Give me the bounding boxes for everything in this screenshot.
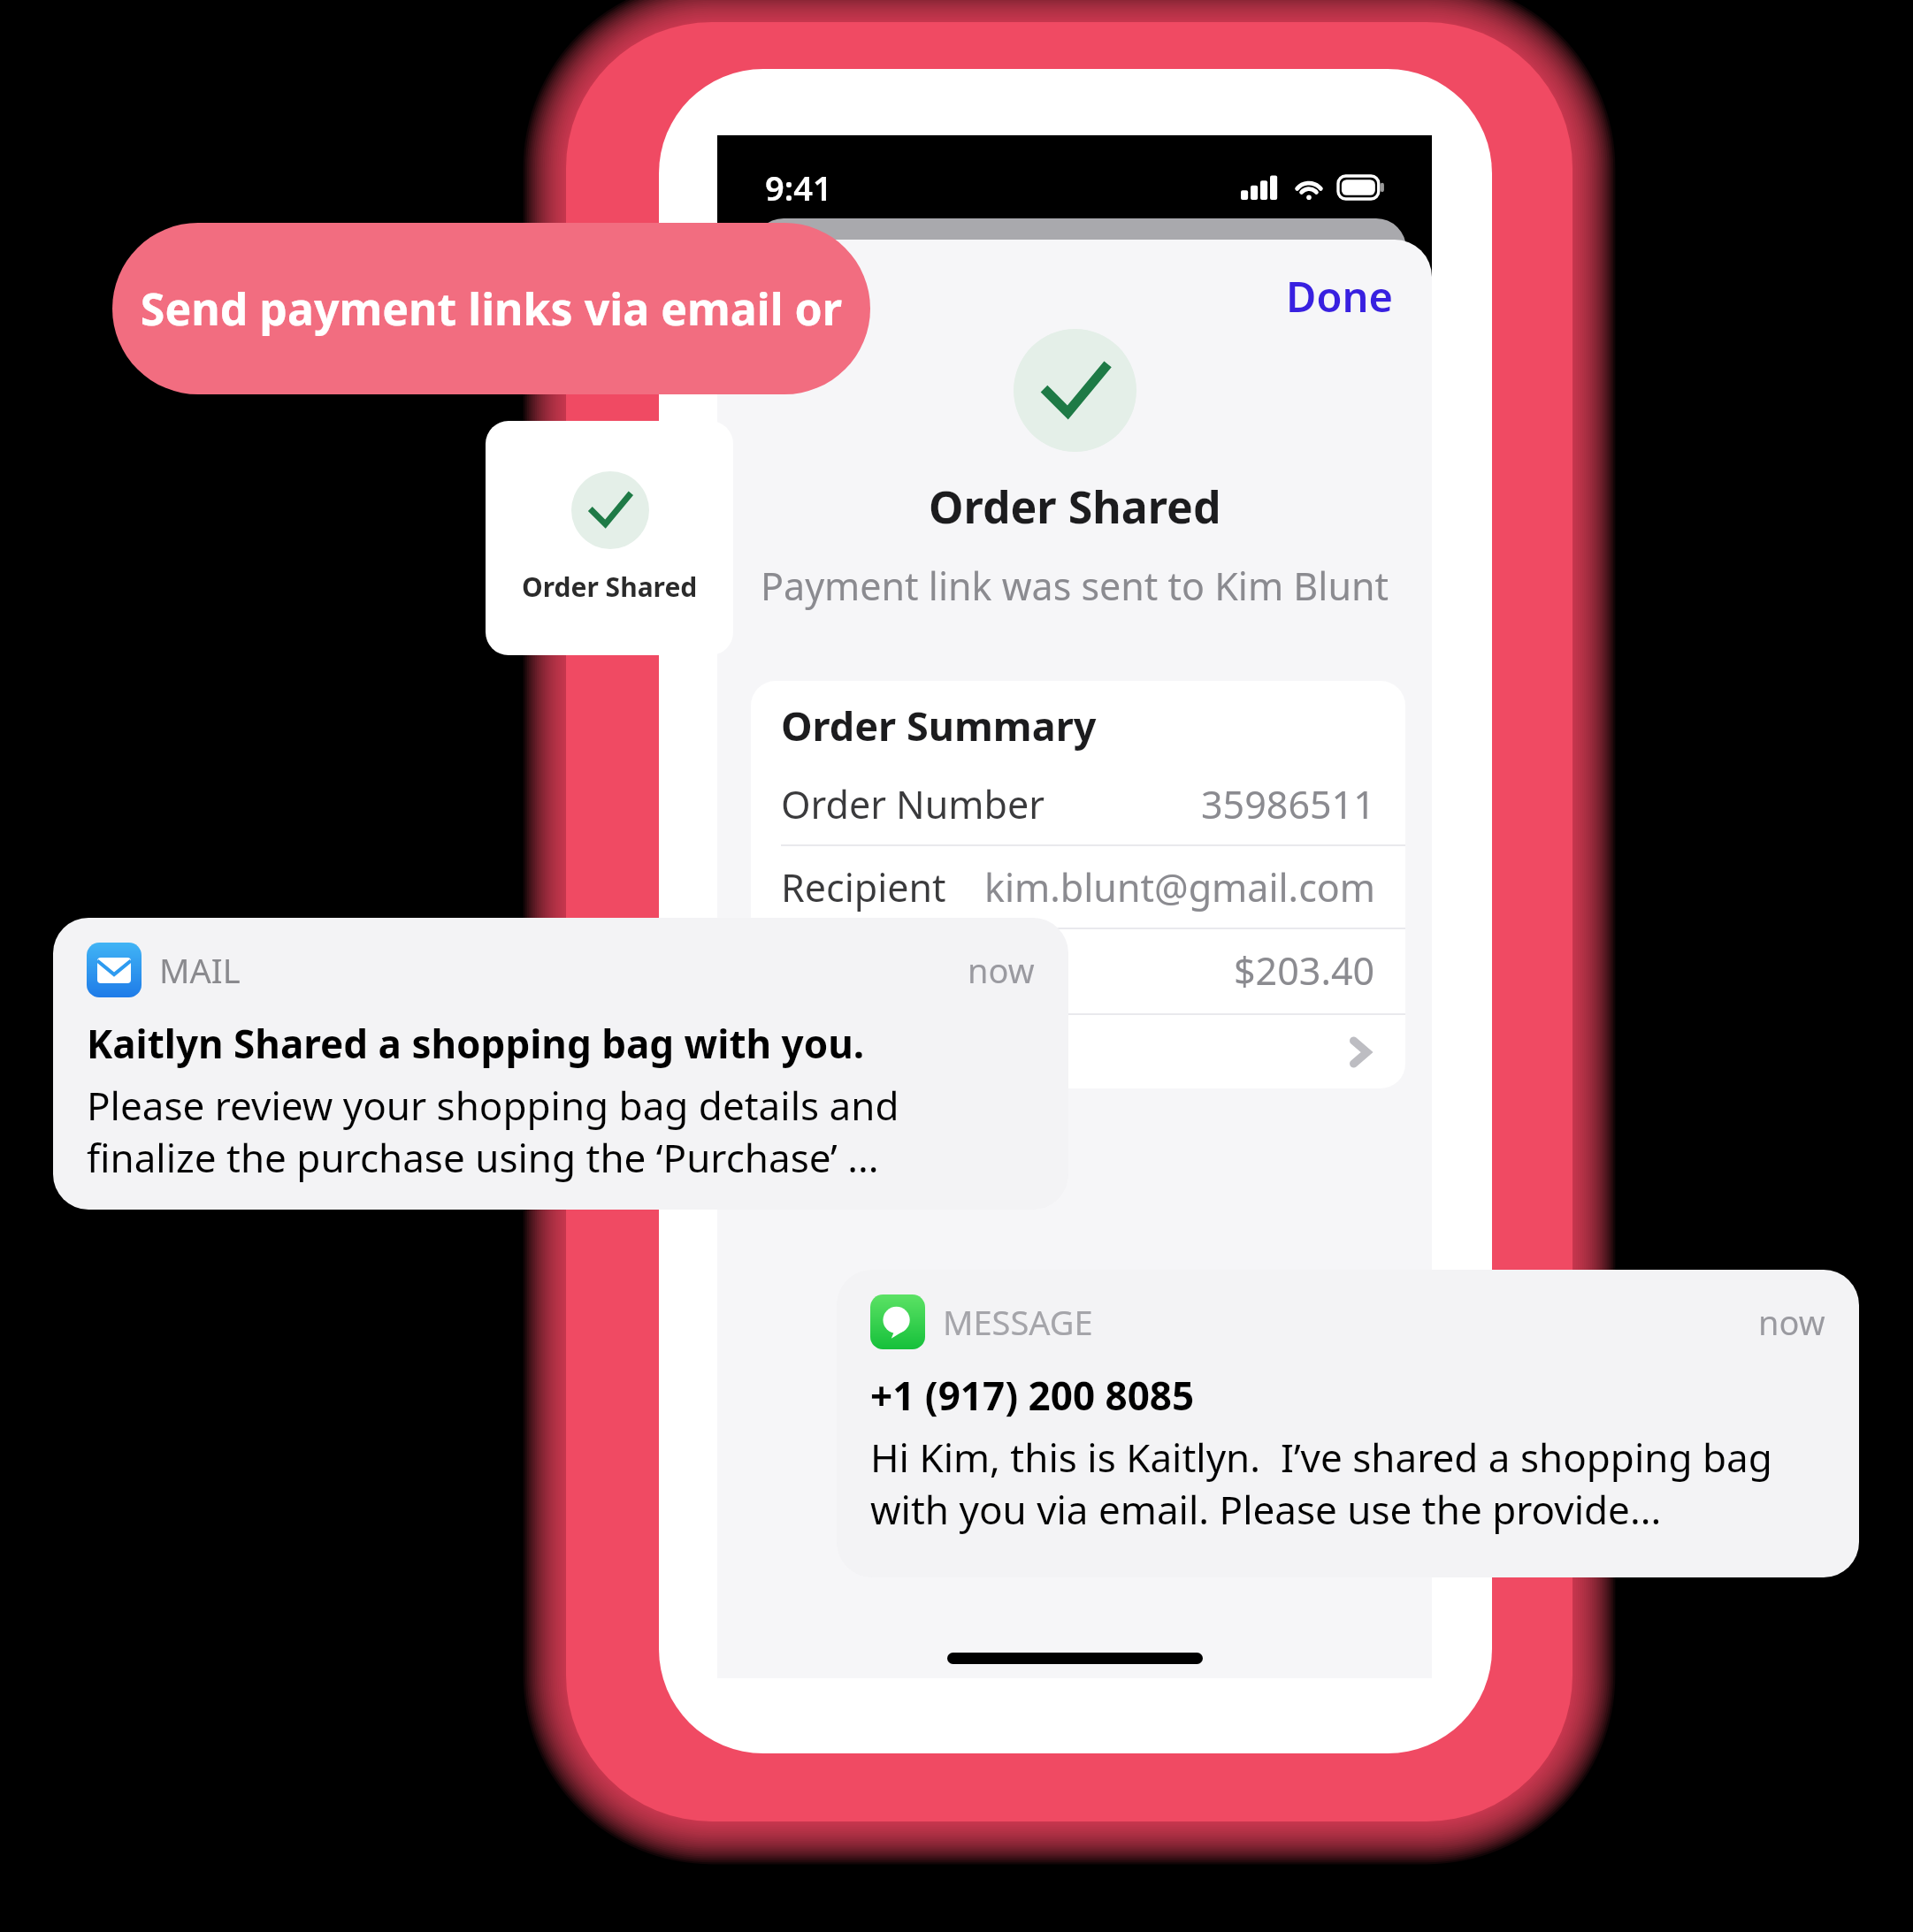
staticText: Order Shared	[929, 477, 1221, 537]
staticText: 35986511	[1201, 778, 1375, 830]
staticText: Please review your shopping bag details …	[87, 1079, 1035, 1183]
staticText: MESSAGE	[943, 1299, 1093, 1345]
other: Mail	[87, 943, 142, 997]
staticText: +1 (917) 200 8085	[870, 1369, 1195, 1422]
staticText: Done	[1286, 268, 1393, 325]
other: Messages	[870, 1294, 925, 1349]
staticText: Order Shared	[522, 569, 698, 605]
button[interactable]: View order	[751, 1015, 1405, 1088]
staticText: kim.blunt@gmail.com	[984, 861, 1375, 913]
staticText: Hi Kim, this is Kaitlyn. I’ve shared a s…	[870, 1431, 1825, 1535]
staticText: Kaitlyn Shared a shopping bag with you.	[87, 1017, 865, 1070]
button[interactable]: Send payment links via email or text	[112, 223, 870, 394]
button[interactable]: Done	[1275, 259, 1404, 333]
staticText: 9:41	[765, 164, 832, 210]
staticText: now	[968, 947, 1035, 993]
staticText: Payment link was sent to Kim Blunt	[761, 560, 1389, 612]
staticText: now	[1758, 1299, 1825, 1345]
button[interactable]: Mail	[53, 918, 1068, 1210]
staticText: Order Number	[781, 778, 1045, 830]
staticText: Send payment links via email or text	[112, 279, 870, 339]
staticText: $203.40	[1234, 944, 1375, 997]
staticText: Recipient	[781, 861, 946, 913]
staticText: Order Summary	[781, 699, 1097, 752]
staticText: MAIL	[159, 947, 241, 993]
button[interactable]: Messages	[837, 1270, 1859, 1577]
